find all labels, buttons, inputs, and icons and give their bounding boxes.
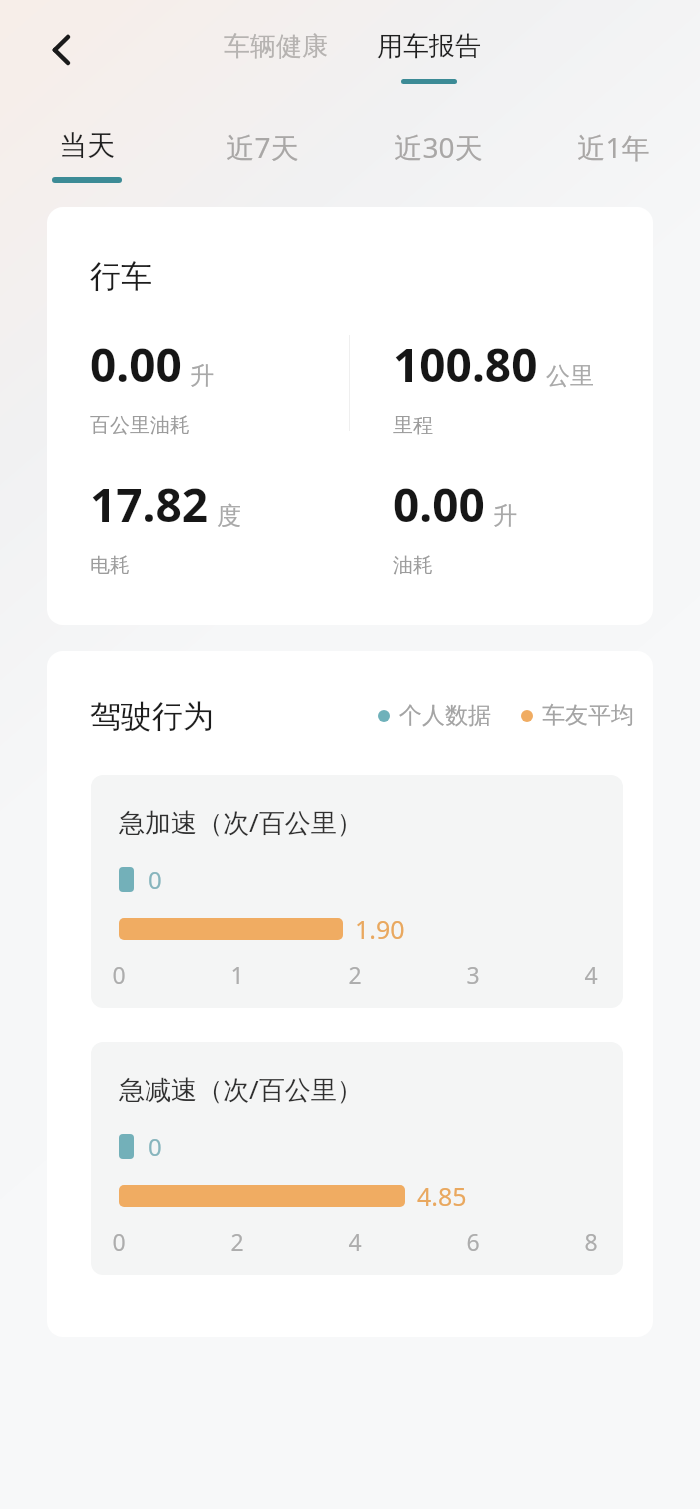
button[interactable]: 近7天	[202, 122, 322, 172]
staticText: 油耗	[393, 553, 433, 578]
staticText: 急减速（次/百公里）	[119, 1071, 363, 1107]
button[interactable]: 近1年	[553, 122, 673, 172]
staticText: 个人数据	[399, 701, 491, 730]
staticText: 急加速（次/百公里）	[119, 804, 363, 840]
staticText: 0.00	[393, 473, 485, 536]
staticText: 当天	[59, 128, 115, 163]
button[interactable]: 近30天	[378, 122, 498, 172]
button[interactable]: Back	[38, 26, 86, 74]
staticText: 度	[217, 501, 241, 531]
staticText: 0	[148, 863, 162, 896]
staticText: 电耗	[90, 553, 130, 578]
staticText: 0	[112, 1226, 126, 1257]
staticText: 车友平均	[542, 701, 634, 730]
button[interactable]: 急减速（次/百公里）	[91, 1042, 623, 1275]
staticText: 升	[190, 361, 214, 391]
staticText: 4	[584, 959, 598, 990]
staticText: 100.80	[393, 333, 538, 396]
staticText: 4.85	[417, 1179, 467, 1213]
button[interactable]: 车友平均	[521, 701, 634, 730]
button[interactable]: 个人数据	[378, 701, 491, 730]
staticText: 3	[466, 959, 480, 990]
staticText: 1	[230, 959, 244, 990]
button[interactable]: 车辆健康	[212, 22, 340, 71]
staticText: 近7天	[226, 128, 299, 166]
staticText: 1.90	[355, 912, 405, 946]
staticText: 6	[466, 1226, 480, 1257]
staticText: 公里	[546, 361, 594, 391]
staticText: 驾驶行为	[90, 697, 214, 736]
staticText: 近1年	[577, 128, 650, 166]
staticText: 0	[148, 1130, 162, 1163]
staticText: 2	[230, 1226, 244, 1257]
staticText: 里程	[393, 413, 433, 438]
staticText: 百公里油耗	[90, 413, 190, 438]
staticText: 8	[584, 1226, 598, 1257]
button[interactable]: 行车	[47, 207, 653, 625]
staticText: 17.82	[90, 473, 209, 536]
staticText: 4	[348, 1226, 362, 1257]
staticText: 近30天	[394, 128, 483, 166]
staticText: 用车报告	[377, 30, 481, 63]
staticText: 车辆健康	[224, 30, 328, 63]
staticText: 行车	[90, 257, 152, 296]
staticText: 0	[112, 959, 126, 990]
button[interactable]: 急加速（次/百公里）	[91, 775, 623, 1008]
staticText: 升	[493, 501, 517, 531]
staticText: 2	[348, 959, 362, 990]
button[interactable]: 当天	[27, 122, 147, 183]
button[interactable]: 用车报告	[365, 22, 493, 84]
staticText: 0.00	[90, 333, 182, 396]
